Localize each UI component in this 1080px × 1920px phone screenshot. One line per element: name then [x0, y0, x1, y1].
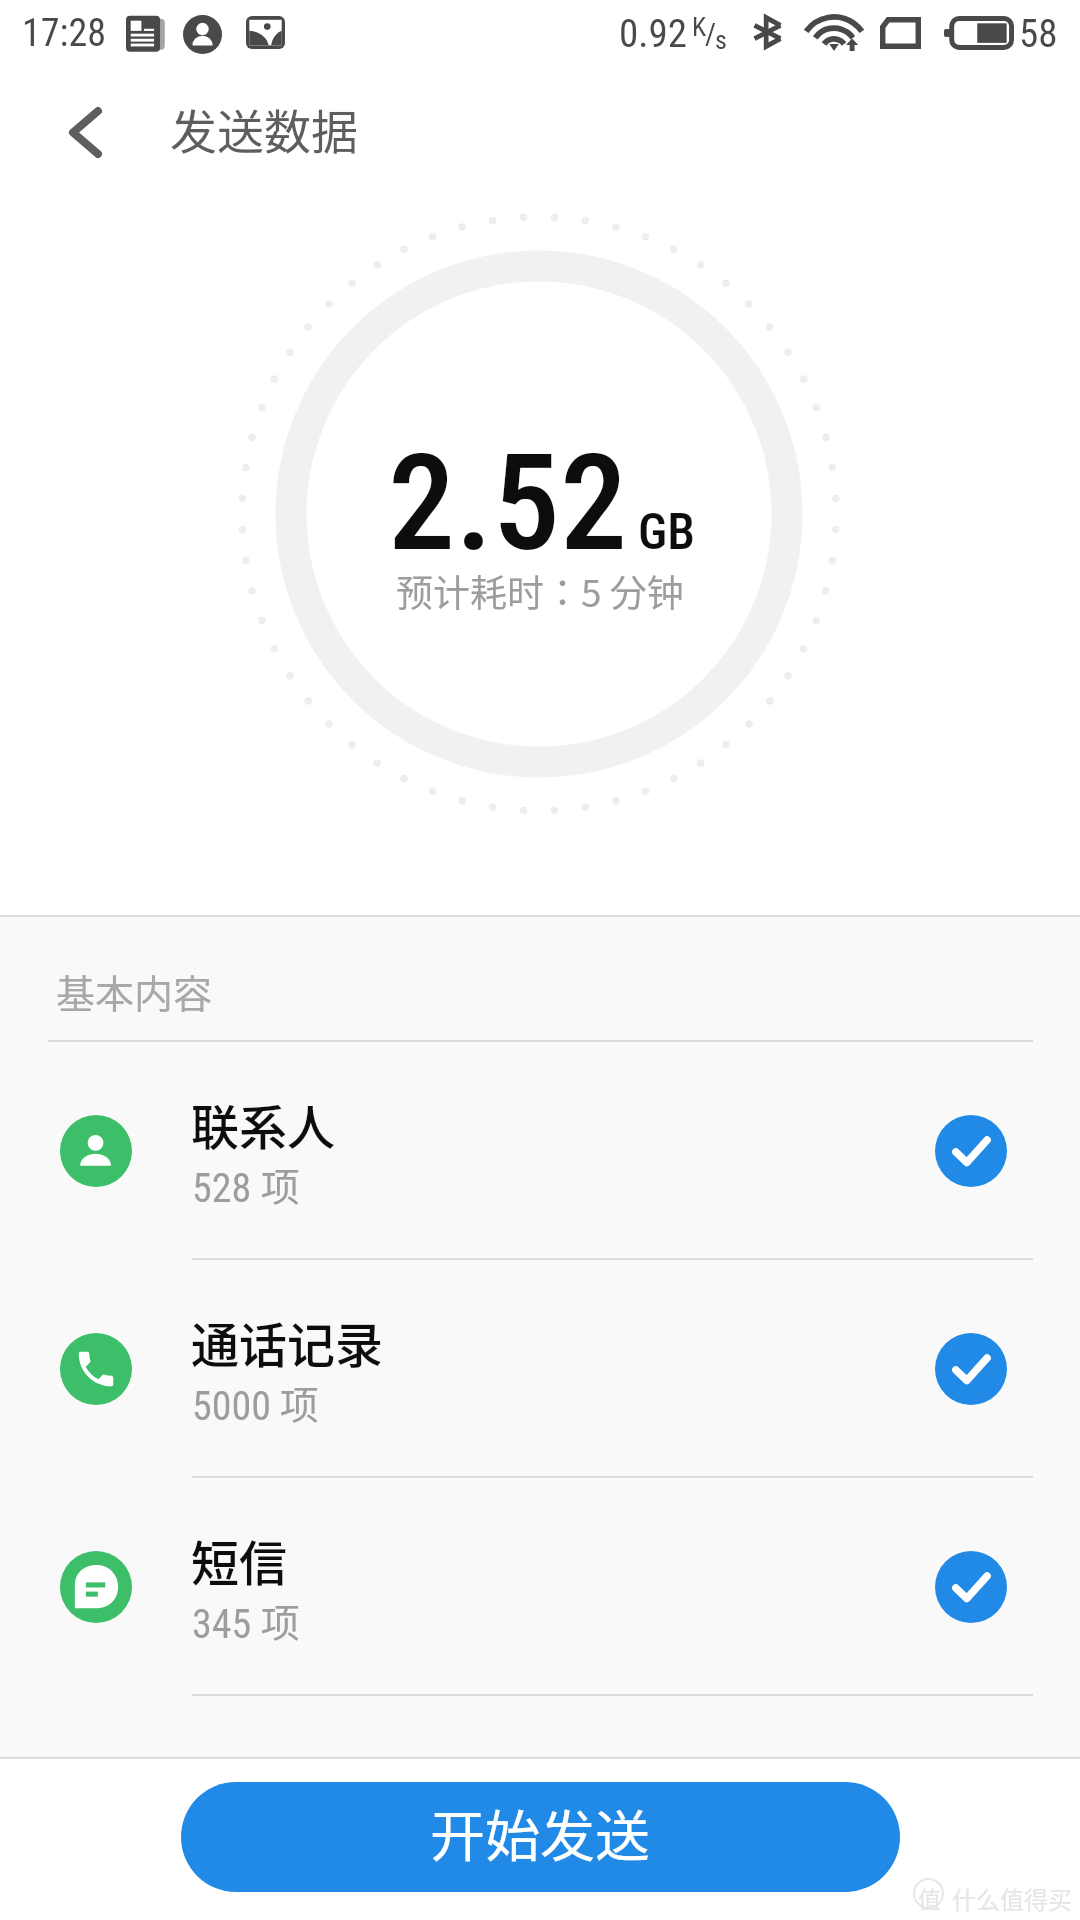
- staticText: 什么值得买: [952, 1881, 1072, 1916]
- staticText: 短信: [191, 1525, 288, 1595]
- other: Selected: [935, 1551, 1007, 1623]
- staticText: 项: [271, 1374, 319, 1430]
- staticText: 528: [192, 1165, 252, 1212]
- staticText: 0.92: [619, 11, 688, 57]
- staticText: 项: [252, 1592, 300, 1648]
- staticText: 值: [918, 1881, 941, 1914]
- staticText: 项: [252, 1156, 300, 1212]
- staticText: 2.52: [388, 425, 628, 582]
- button[interactable]: 开始发送: [181, 1782, 900, 1892]
- button[interactable]: 通话记录: [0, 1260, 1080, 1478]
- staticText: 预计耗时：5 分钟: [396, 564, 684, 618]
- staticText: 345: [192, 1601, 252, 1648]
- staticText: 5000: [192, 1383, 271, 1430]
- staticText: /: [705, 16, 717, 51]
- button[interactable]: 短信: [0, 1478, 1080, 1696]
- staticText: GB: [638, 503, 696, 562]
- staticText: 17:28: [22, 11, 106, 56]
- staticText: 发送数据: [170, 94, 358, 162]
- other: Selected: [935, 1115, 1007, 1187]
- other: Selected: [935, 1333, 1007, 1405]
- staticText: 通话记录: [191, 1307, 384, 1377]
- staticText: 联系人: [191, 1089, 336, 1159]
- staticText: 基本内容: [56, 963, 213, 1019]
- staticText: 开始发送: [430, 1792, 651, 1872]
- staticText: 58: [1019, 11, 1058, 57]
- button[interactable]: Back: [41, 88, 129, 176]
- staticText: s: [715, 25, 727, 55]
- button[interactable]: 联系人: [0, 1042, 1080, 1260]
- staticText: K: [692, 12, 707, 42]
